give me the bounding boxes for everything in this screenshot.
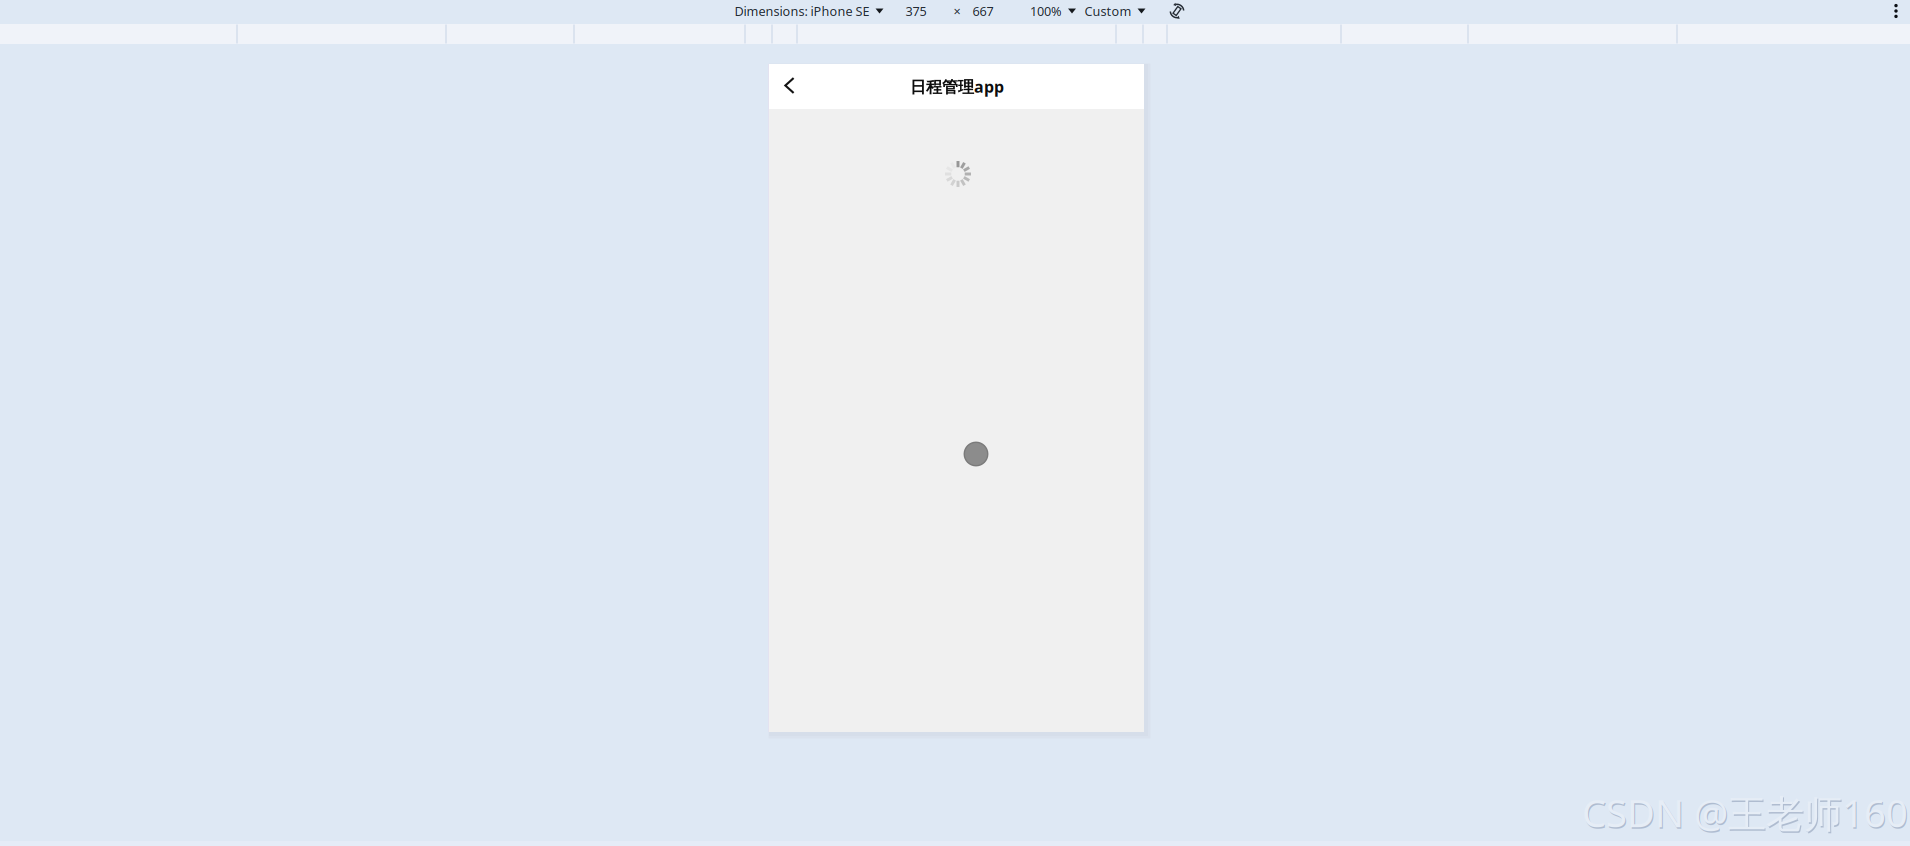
button[interactable]: More options xyxy=(1888,2,1904,19)
staticText: 667 xyxy=(972,2,993,20)
staticText: Custom xyxy=(1084,2,1131,20)
button[interactable]: Rotate screen orientation xyxy=(1167,1,1187,21)
staticText: 100% xyxy=(1030,2,1062,20)
button[interactable]: Dimensions: iPhone SE xyxy=(730,0,887,23)
staticText: 375 xyxy=(905,2,926,20)
button[interactable]: 日程管理app xyxy=(906,70,1008,103)
button[interactable]: 100% xyxy=(1026,0,1080,23)
staticText: CSDN @王老师160 xyxy=(1582,786,1908,839)
staticText: CSDN @王老师160 xyxy=(1583,788,1909,840)
staticText: Dimensions: iPhone SE xyxy=(734,2,869,20)
button[interactable]: Custom xyxy=(1080,0,1149,23)
button[interactable]: Back xyxy=(773,64,817,109)
staticText: × xyxy=(953,2,960,20)
staticText: 日程管理app xyxy=(910,76,1004,97)
